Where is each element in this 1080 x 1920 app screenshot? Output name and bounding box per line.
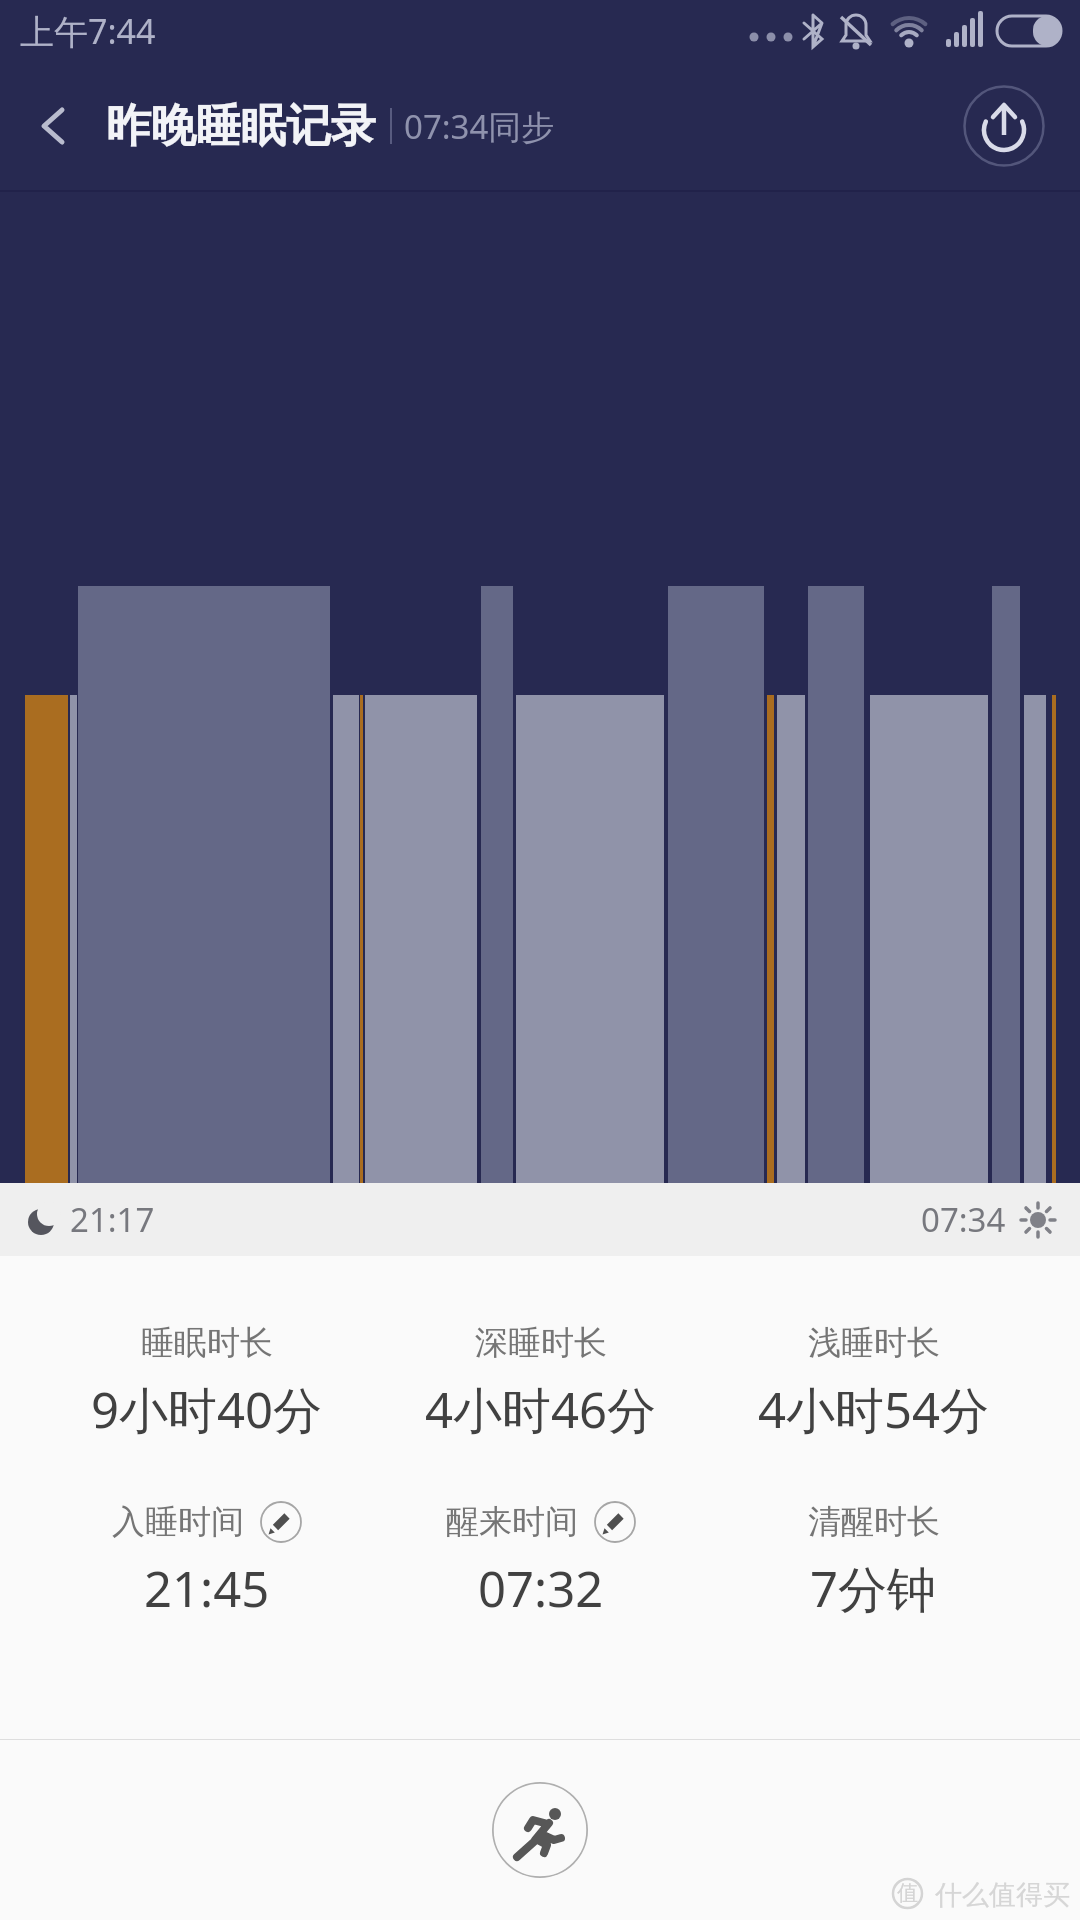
button[interactable] (954, 62, 1054, 190)
staticText: 21:17 (70, 1197, 155, 1242)
staticText: 4小时54分 (758, 1376, 990, 1443)
staticText: 入睡时间 (112, 1501, 244, 1543)
staticText: 昨晚睡眠记录 (106, 98, 376, 155)
button[interactable] (14, 62, 92, 190)
staticText: 上午7:44 (20, 8, 156, 54)
staticText: 21:45 (144, 1555, 270, 1622)
staticText: 睡眠时长 (141, 1322, 273, 1364)
button[interactable] (492, 1782, 588, 1878)
staticText: 值 (897, 1880, 918, 1906)
staticText: 什么值得买 (935, 1878, 1070, 1908)
staticText: 07:34 (921, 1197, 1006, 1242)
staticText: 清醒时长 (808, 1501, 940, 1543)
staticText: 07:32 (478, 1555, 604, 1622)
staticText: 醒来时间 (446, 1501, 578, 1543)
staticText: 4小时46分 (425, 1376, 657, 1443)
staticText: 9小时40分 (91, 1376, 323, 1443)
staticText: 深睡时长 (475, 1322, 607, 1364)
staticText: 7分钟 (810, 1555, 937, 1622)
staticText: 07:34同步 (404, 104, 555, 149)
button[interactable] (260, 1501, 302, 1543)
staticText: 浅睡时长 (808, 1322, 940, 1364)
button[interactable] (594, 1501, 636, 1543)
